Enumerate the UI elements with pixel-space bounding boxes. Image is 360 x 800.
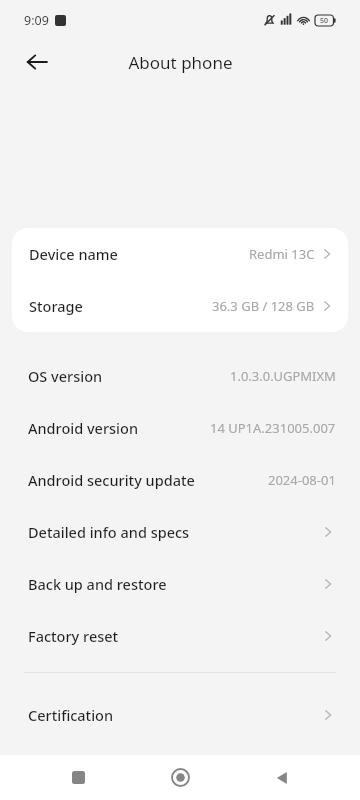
button[interactable]: Android security update bbox=[0, 454, 360, 506]
staticText: Detailed info and specs bbox=[28, 522, 190, 542]
button[interactable]: Back bbox=[258, 755, 306, 800]
staticText: Certification bbox=[28, 705, 114, 725]
staticText: Android version bbox=[28, 418, 138, 438]
button[interactable]: Home bbox=[156, 755, 204, 800]
button[interactable]: Factory reset bbox=[0, 610, 360, 662]
button[interactable]: Storage bbox=[12, 280, 348, 332]
staticText: 14 UP1A.231005.007 bbox=[210, 419, 336, 437]
staticText: 9:09 bbox=[24, 12, 49, 29]
staticText: OS version bbox=[28, 366, 103, 386]
staticText: 2024-08-01 bbox=[268, 471, 336, 489]
button[interactable]: Recents bbox=[54, 755, 102, 800]
button[interactable]: Device name bbox=[12, 228, 348, 280]
staticText: 1.0.3.0.UGPMIXM bbox=[230, 367, 336, 385]
staticText: Device name bbox=[29, 244, 118, 264]
staticText: About phone bbox=[128, 51, 233, 74]
button[interactable]: OS version bbox=[0, 350, 360, 402]
button[interactable]: Certification bbox=[0, 689, 360, 741]
button[interactable]: Detailed info and specs bbox=[0, 506, 360, 558]
staticText: 36.3 GB / 128 GB bbox=[212, 297, 315, 315]
staticText: Android security update bbox=[28, 470, 195, 490]
staticText: Back up and restore bbox=[28, 574, 167, 594]
staticText: 50 bbox=[320, 16, 329, 26]
button[interactable]: Back up and restore bbox=[0, 558, 360, 610]
staticText: Factory reset bbox=[28, 626, 119, 646]
staticText: Storage bbox=[29, 296, 83, 316]
button[interactable]: Back bbox=[14, 40, 60, 84]
staticText: Redmi 13C bbox=[249, 245, 315, 263]
button[interactable]: Android version bbox=[0, 402, 360, 454]
